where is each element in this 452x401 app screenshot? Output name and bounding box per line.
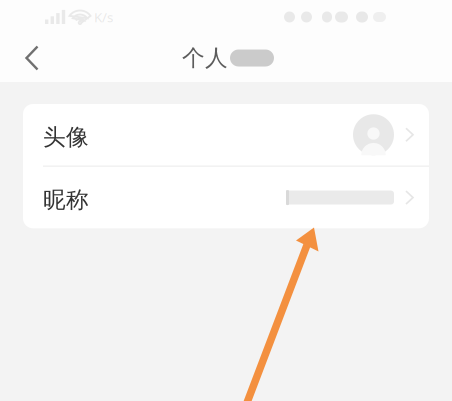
staticText: 个人 <box>182 44 228 72</box>
button[interactable]: 头像 <box>23 104 429 165</box>
staticText: K/s <box>94 8 113 26</box>
button[interactable]: 返回 <box>9 36 55 80</box>
staticText: 头像 <box>43 123 89 151</box>
button[interactable]: 昵称 <box>23 167 429 228</box>
staticText: 昵称 <box>43 186 89 214</box>
